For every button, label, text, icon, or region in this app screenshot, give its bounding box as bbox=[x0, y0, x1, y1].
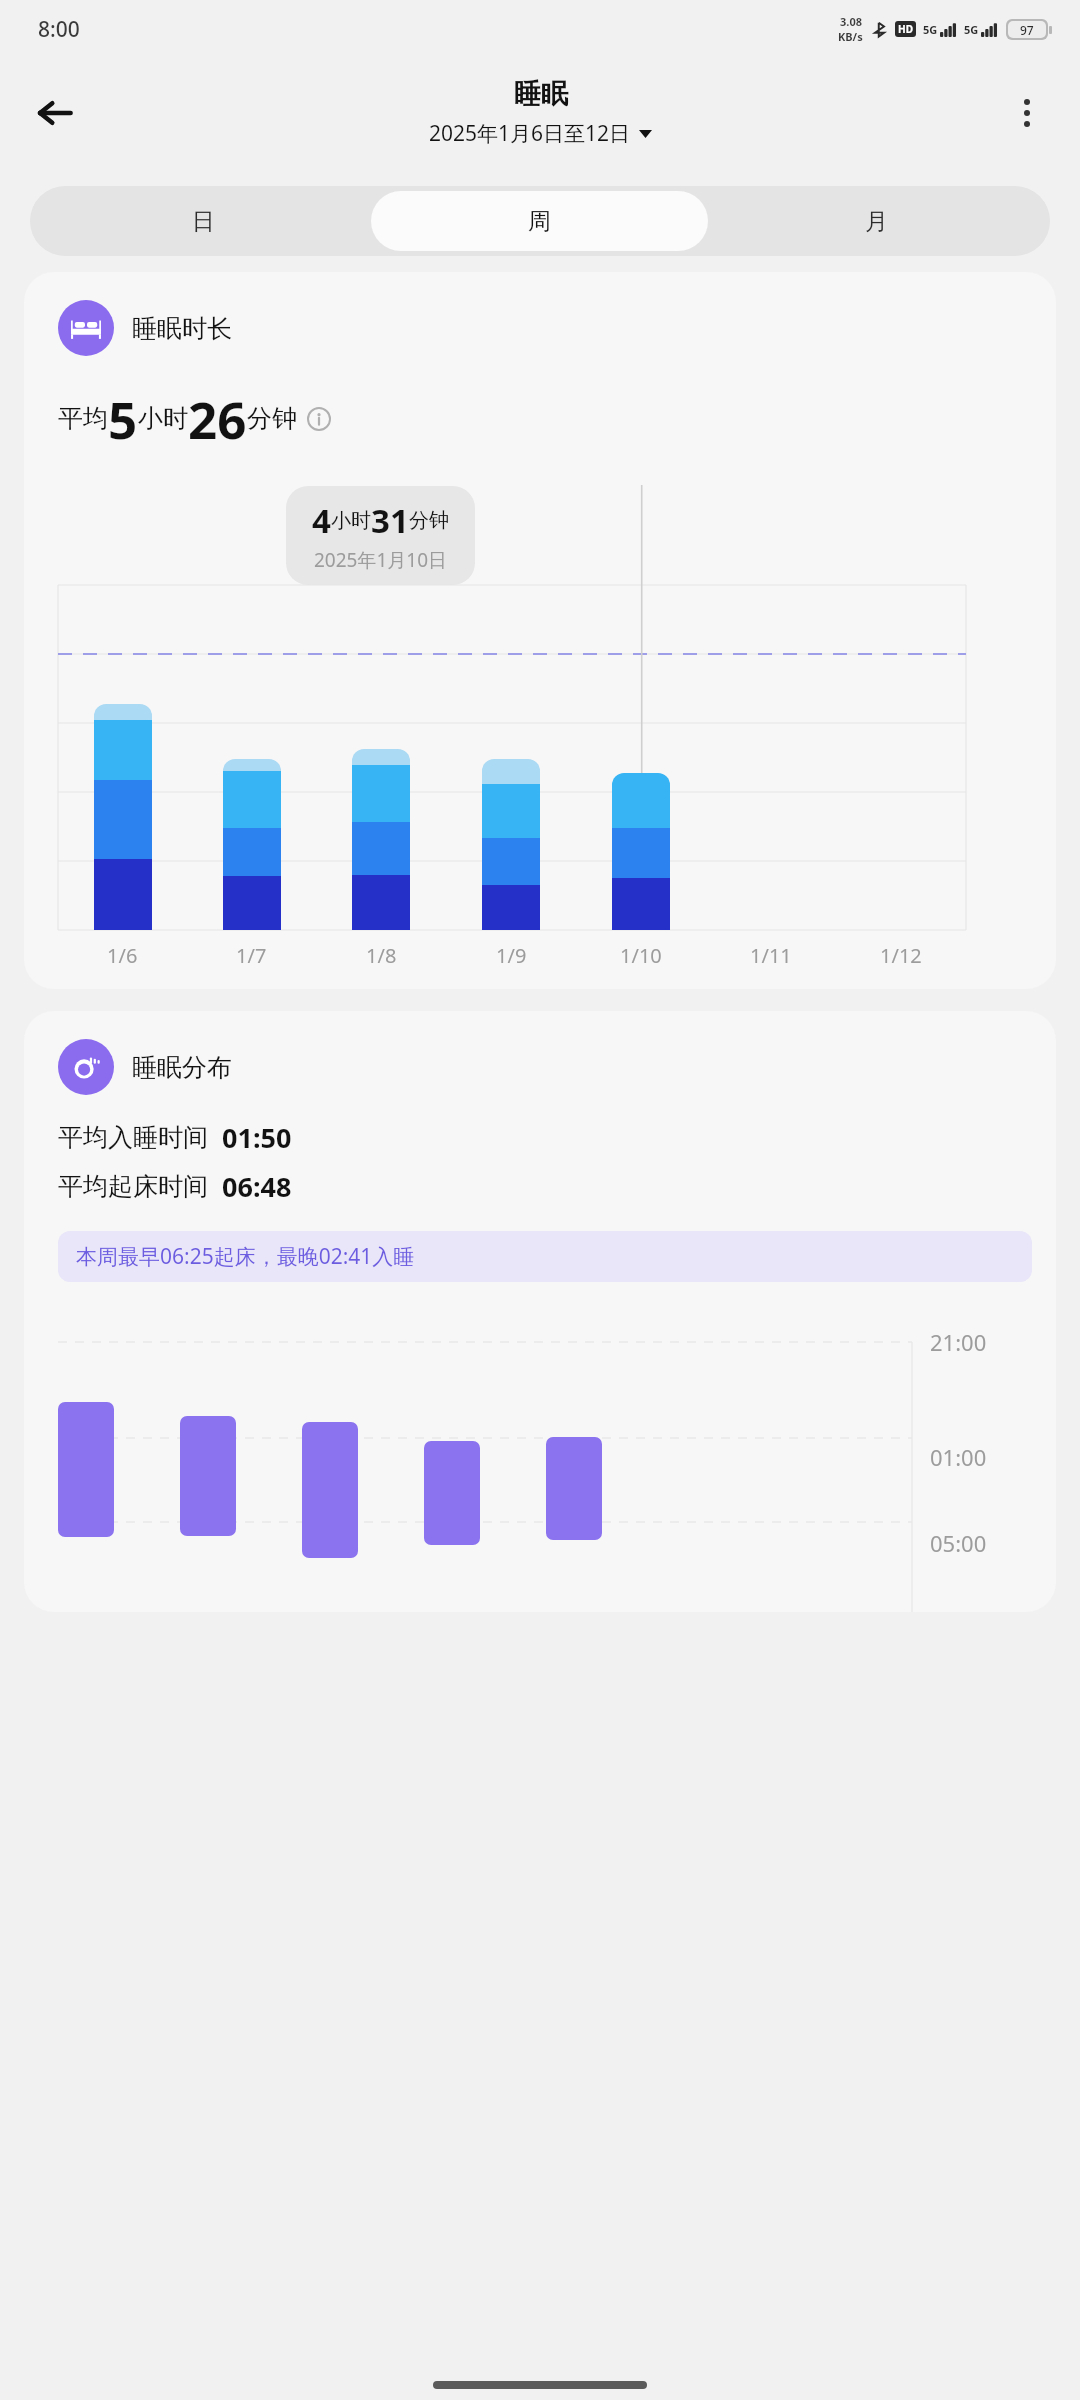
staticText: 1/10 bbox=[620, 942, 662, 969]
staticText: 31 bbox=[371, 498, 409, 543]
button[interactable]: 2025年1月6日至12日 bbox=[425, 117, 656, 150]
staticText: 周 bbox=[528, 207, 551, 236]
staticText: 21:00 bbox=[930, 1327, 987, 1357]
staticText: 1/6 bbox=[107, 942, 138, 969]
staticText: 睡眠分布 bbox=[132, 1052, 232, 1083]
staticText: 平均起床时间 bbox=[58, 1171, 208, 1202]
staticText: 4 bbox=[312, 498, 331, 543]
staticText: 月 bbox=[865, 207, 888, 236]
staticText: 小时 bbox=[138, 403, 188, 434]
staticText: 5G bbox=[923, 22, 938, 37]
staticText: 1/11 bbox=[750, 942, 792, 969]
staticText: 5 bbox=[108, 384, 138, 453]
staticText: 平均入睡时间 bbox=[58, 1122, 208, 1153]
staticText: 本周最早06:25起床，最晚02:41入睡 bbox=[76, 1242, 415, 1271]
staticText: 06:48 bbox=[222, 1168, 292, 1205]
staticText: 分钟 bbox=[409, 508, 449, 533]
staticText: 2025年1月10日 bbox=[314, 547, 448, 573]
staticText: 小时 bbox=[331, 508, 371, 533]
staticText: 01:00 bbox=[930, 1442, 987, 1472]
staticText: 1/12 bbox=[880, 942, 922, 969]
staticText: 97 bbox=[1020, 22, 1034, 38]
staticText: 1/9 bbox=[496, 942, 527, 969]
staticText: 日 bbox=[192, 207, 215, 236]
button[interactable]: 睡眠时长 bbox=[24, 272, 1056, 989]
staticText: KB/s bbox=[838, 29, 863, 44]
button[interactable]: 周 bbox=[371, 191, 708, 251]
staticText: 睡眠时长 bbox=[132, 313, 232, 344]
button[interactable]: 睡眠分布 bbox=[24, 1011, 1056, 1612]
staticText: 分钟 bbox=[247, 403, 297, 434]
button[interactable]: Info bbox=[307, 407, 331, 431]
staticText: 26 bbox=[188, 384, 247, 453]
staticText: 1/7 bbox=[236, 942, 267, 969]
staticText: 2025年1月6日至12日 bbox=[429, 119, 631, 148]
staticText: 8:00 bbox=[38, 15, 80, 44]
button[interactable]: More options bbox=[1000, 86, 1054, 140]
staticText: 1/8 bbox=[366, 942, 397, 969]
staticText: 05:00 bbox=[930, 1528, 987, 1558]
staticText: 01:50 bbox=[222, 1119, 292, 1156]
staticText: 平均 bbox=[58, 403, 108, 434]
staticText: 睡眠 bbox=[514, 77, 568, 111]
button[interactable]: 日 bbox=[35, 191, 371, 251]
staticText: 3.08 bbox=[840, 14, 862, 29]
button[interactable]: Back bbox=[26, 84, 84, 142]
staticText: HD bbox=[898, 22, 913, 36]
staticText: 5G bbox=[964, 22, 979, 37]
button[interactable]: 月 bbox=[708, 191, 1045, 251]
